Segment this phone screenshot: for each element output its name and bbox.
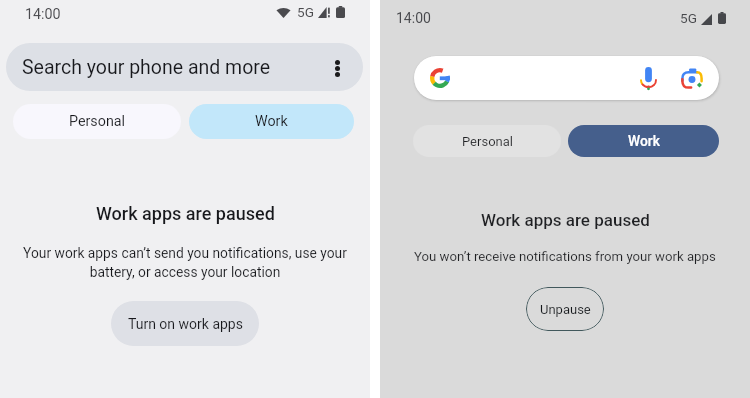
button[interactable]: Google Lens: [679, 65, 705, 91]
staticText: Personal: [462, 134, 513, 149]
staticText: 5G: [297, 4, 314, 20]
staticText: Your work apps can’t send you notificati…: [0, 245, 370, 280]
button[interactable]: Work: [189, 104, 354, 139]
button[interactable]: Work: [568, 125, 719, 157]
staticText: Work: [255, 113, 288, 130]
staticText: Unpause: [540, 302, 591, 317]
staticText: Personal: [69, 113, 126, 130]
button[interactable]: Unpause: [526, 287, 604, 331]
button[interactable]: Personal: [13, 104, 181, 139]
button[interactable]: Search your phone and more: [6, 43, 363, 91]
staticText: 14:00: [396, 10, 431, 26]
button[interactable]: Voice search: [635, 65, 661, 91]
button[interactable]: More options: [323, 53, 351, 81]
staticText: 5G: [680, 10, 697, 26]
button[interactable]: Voice search: [414, 56, 719, 100]
staticText: Search your phone and more: [22, 56, 271, 79]
staticText: Work: [628, 133, 660, 149]
button[interactable]: Turn on work apps: [111, 301, 259, 346]
staticText: 14:00: [25, 6, 61, 23]
staticText: Work apps are paused: [96, 203, 275, 224]
staticText: Work apps are paused: [481, 210, 650, 230]
staticText: You won’t receive notifications from you…: [414, 249, 716, 264]
staticText: Turn on work apps: [128, 316, 243, 332]
button[interactable]: Personal: [413, 125, 561, 157]
